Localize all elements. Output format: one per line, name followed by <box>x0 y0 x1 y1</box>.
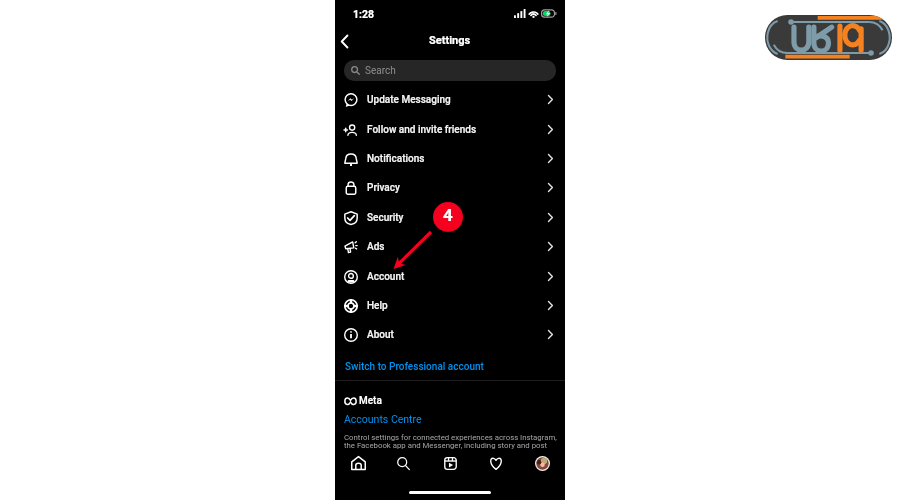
button[interactable]: Home <box>347 452 369 474</box>
button[interactable]: Privacy <box>335 173 565 202</box>
button[interactable]: Help <box>335 291 565 320</box>
staticText: Settings <box>429 34 471 47</box>
staticText: Notifications <box>367 153 425 165</box>
staticText: Accounts Centre <box>344 413 422 425</box>
staticText: Control settings for connected experienc… <box>344 433 559 450</box>
button[interactable]: Follow and invite friends <box>335 115 565 144</box>
button[interactable]: Search <box>344 60 556 81</box>
staticText: Ads <box>367 241 385 253</box>
staticText: Meta <box>359 395 382 407</box>
button[interactable]: Activity <box>485 452 507 474</box>
staticText: Update Messaging <box>367 94 451 106</box>
staticText: About <box>367 329 394 341</box>
staticText: Security <box>367 212 404 224</box>
button[interactable]: Security <box>335 203 565 232</box>
button[interactable]: Notifications <box>335 144 565 173</box>
button[interactable]: Switch to Professional account <box>335 357 565 375</box>
button[interactable]: Search <box>392 452 414 474</box>
staticText: Search <box>365 65 396 77</box>
staticText: 4 <box>443 205 453 225</box>
button[interactable]: About <box>335 320 565 349</box>
staticText: 1:28 <box>353 8 375 20</box>
staticText: Help <box>367 300 388 312</box>
button[interactable]: Back <box>332 29 356 53</box>
button[interactable]: Accounts Centre <box>344 413 422 425</box>
staticText: Privacy <box>367 182 400 194</box>
staticText: Switch to Professional account <box>345 361 484 373</box>
button[interactable]: Account <box>335 262 565 291</box>
button[interactable]: Update Messaging <box>335 85 565 114</box>
button[interactable]: Profile <box>531 452 553 474</box>
button[interactable]: Reels <box>439 452 461 474</box>
staticText: Follow and invite friends <box>367 124 477 136</box>
button[interactable]: Ads <box>335 232 565 261</box>
staticText: Account <box>367 271 405 283</box>
